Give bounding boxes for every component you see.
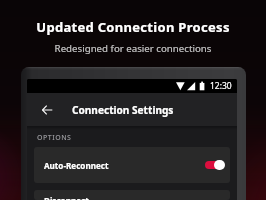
staticText: Updated Connection Process xyxy=(0,18,266,36)
staticText: Auto-Reconnect xyxy=(44,160,109,171)
staticText: Redesigned for easier connections xyxy=(0,42,266,55)
button[interactable]: Back xyxy=(37,100,57,120)
button[interactable]: Auto-Reconnect xyxy=(34,147,230,183)
staticText: Disconnect xyxy=(44,195,89,200)
button[interactable]: Disconnect xyxy=(34,190,230,200)
staticText: OPTIONS xyxy=(37,133,72,143)
staticText: 12:30 xyxy=(210,80,232,92)
staticText: Connection Settings xyxy=(72,103,174,117)
